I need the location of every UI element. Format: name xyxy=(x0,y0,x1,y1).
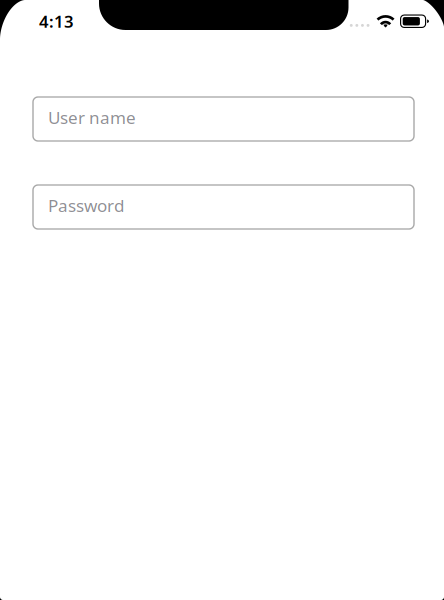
staticText: Password xyxy=(48,194,124,217)
staticText: 4:13 xyxy=(39,10,74,33)
button[interactable]: Password xyxy=(33,185,414,229)
button[interactable]: User name xyxy=(33,97,414,141)
staticText: User name xyxy=(48,106,136,129)
